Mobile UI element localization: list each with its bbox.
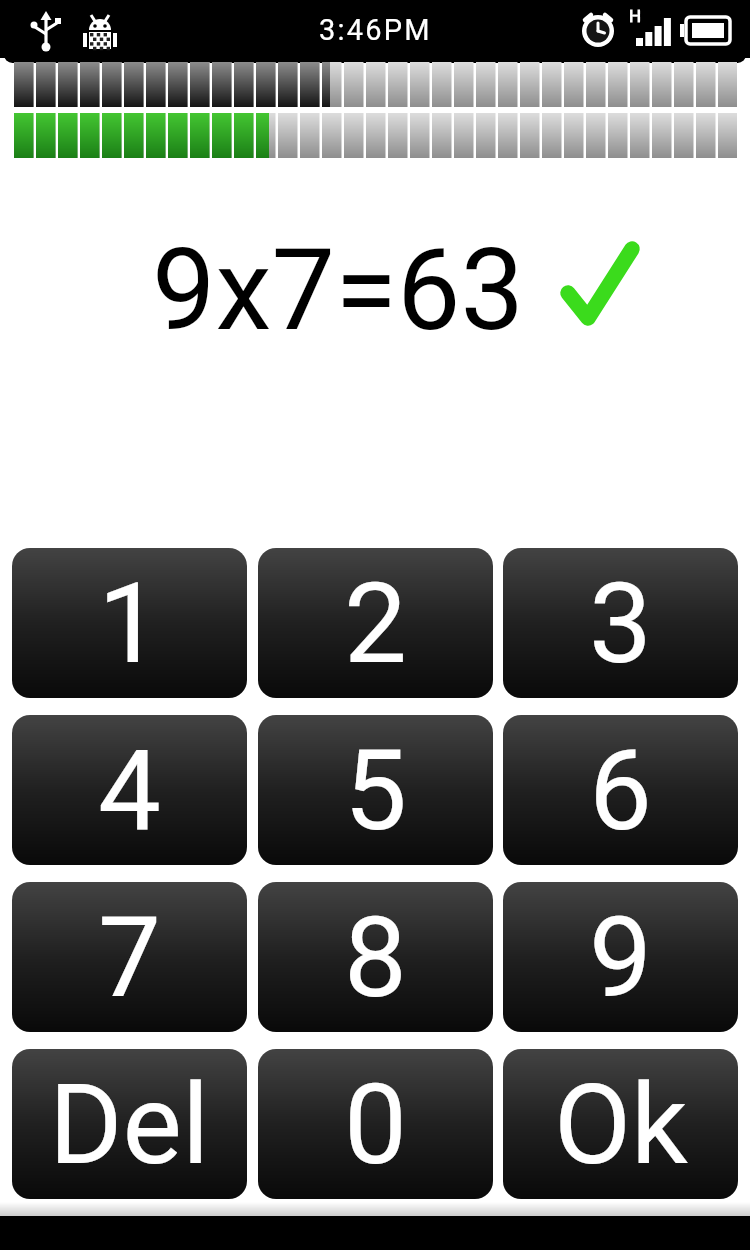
- button[interactable]: 9: [503, 882, 738, 1032]
- button[interactable]: 3: [503, 548, 738, 698]
- staticText: 9: [589, 892, 652, 1023]
- staticText: 0: [344, 1059, 407, 1190]
- staticText: 3: [589, 558, 652, 689]
- button[interactable]: 4: [12, 715, 247, 865]
- button[interactable]: 1: [12, 548, 247, 698]
- staticText: H: [629, 6, 642, 26]
- staticText: 5: [344, 725, 407, 856]
- button[interactable]: 2: [258, 548, 493, 698]
- button[interactable]: 5: [258, 715, 493, 865]
- staticText: 8: [344, 892, 407, 1023]
- staticText: Del: [49, 1059, 210, 1190]
- button[interactable]: 7: [12, 882, 247, 1032]
- button[interactable]: 0: [258, 1049, 493, 1199]
- staticText: 6: [589, 725, 652, 856]
- staticText: Ok: [554, 1059, 688, 1190]
- staticText: 1: [98, 558, 161, 689]
- staticText: 9x7=63: [152, 224, 525, 356]
- staticText: 4: [98, 725, 161, 856]
- button[interactable]: Del: [12, 1049, 247, 1199]
- staticText: 3:46PM: [319, 13, 432, 47]
- button[interactable]: 8: [258, 882, 493, 1032]
- button[interactable]: 6: [503, 715, 738, 865]
- button[interactable]: Ok: [503, 1049, 738, 1199]
- staticText: 7: [98, 892, 161, 1023]
- staticText: 2: [344, 558, 407, 689]
